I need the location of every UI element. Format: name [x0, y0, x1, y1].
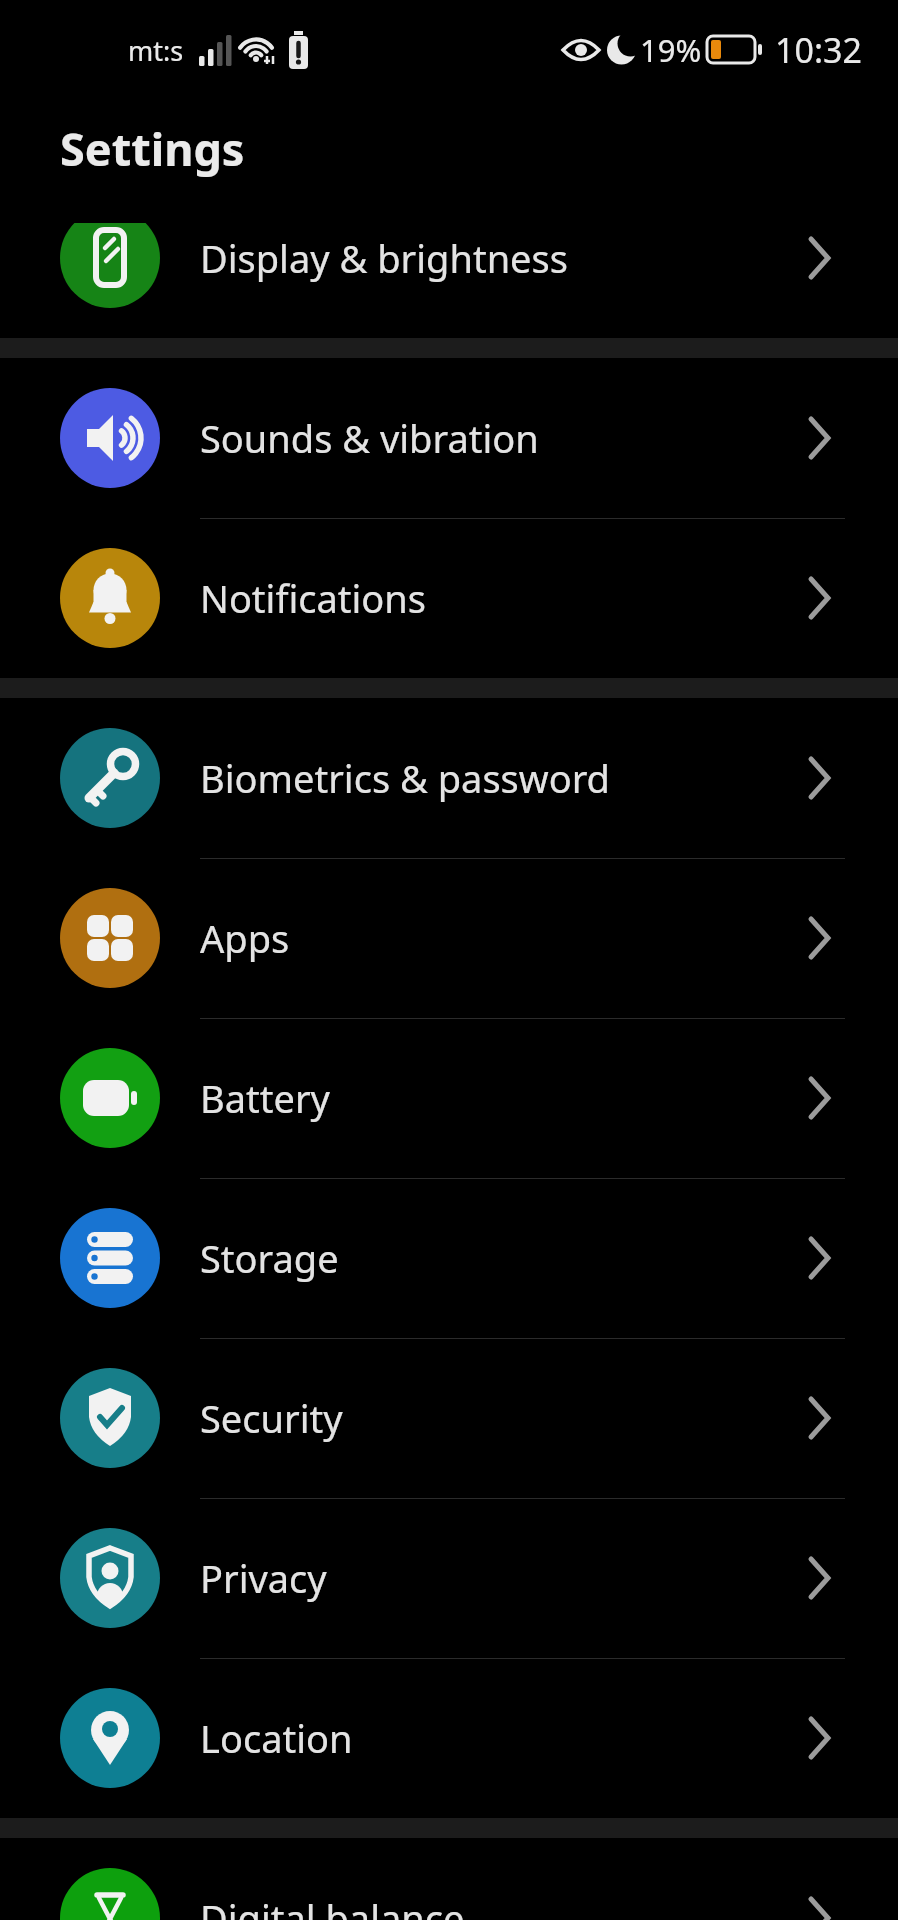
staticText: Apps [200, 912, 290, 964]
button[interactable]: Digital balance [0, 1838, 898, 1920]
button[interactable]: Sounds & vibration [0, 358, 898, 518]
button[interactable]: Battery [0, 1018, 898, 1178]
staticText: Sounds & vibration [200, 412, 539, 464]
staticText: Digital balance [200, 1892, 465, 1920]
button[interactable]: Biometrics & password [0, 698, 898, 858]
button[interactable]: Security [0, 1338, 898, 1498]
button[interactable]: Storage [0, 1178, 898, 1338]
staticText: Notifications [200, 572, 427, 624]
staticText: 19% [640, 29, 702, 71]
staticText: Biometrics & password [200, 752, 610, 804]
staticText: 10:32 [775, 27, 862, 73]
button[interactable]: Notifications [0, 518, 898, 678]
staticText: Security [200, 1392, 343, 1444]
staticText: Settings [60, 118, 245, 179]
button[interactable]: Apps [0, 858, 898, 1018]
staticText: mt:s [128, 32, 184, 69]
button[interactable]: Display & brightness [0, 178, 898, 338]
staticText: Storage [200, 1232, 339, 1284]
staticText: Battery [200, 1072, 330, 1124]
button[interactable]: Location [0, 1658, 898, 1818]
staticText: Display & brightness [200, 232, 568, 284]
staticText: Privacy [200, 1552, 327, 1604]
button[interactable]: Privacy [0, 1498, 898, 1658]
staticText: Location [200, 1712, 353, 1764]
